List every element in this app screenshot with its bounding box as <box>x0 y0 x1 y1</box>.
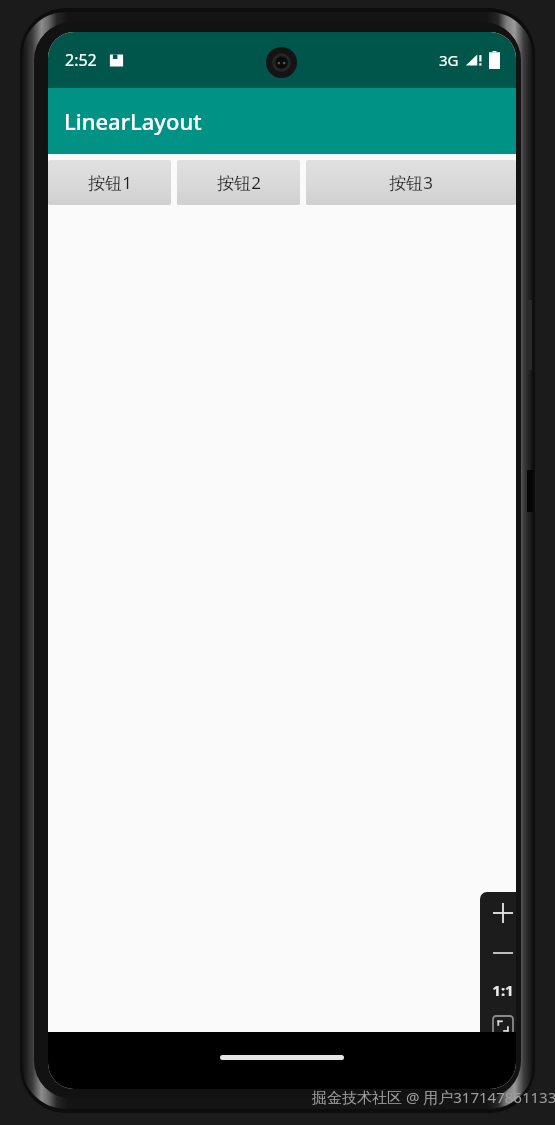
staticText: 按钮1 <box>88 171 132 194</box>
staticText: LinearLayout <box>64 106 202 136</box>
staticText: 1:1 <box>492 980 514 1000</box>
staticText: 按钮2 <box>217 171 261 194</box>
staticText: 掘金技术社区 @ 用户317147861133 <box>312 1087 555 1107</box>
staticText: 3G <box>439 50 459 70</box>
staticText: 2:52 <box>65 49 97 71</box>
button[interactable]: Zoom out <box>480 934 516 972</box>
button[interactable]: 按钮3 <box>306 160 516 205</box>
button[interactable]: 按钮2 <box>177 160 300 205</box>
button[interactable]: Fit to screen <box>480 1008 516 1044</box>
staticText: 按钮3 <box>389 171 433 194</box>
button[interactable]: Zoom in <box>480 892 516 934</box>
button[interactable]: Home gesture <box>220 1055 344 1060</box>
button[interactable]: 1:1 <box>480 972 516 1008</box>
button[interactable]: 按钮1 <box>48 160 171 205</box>
